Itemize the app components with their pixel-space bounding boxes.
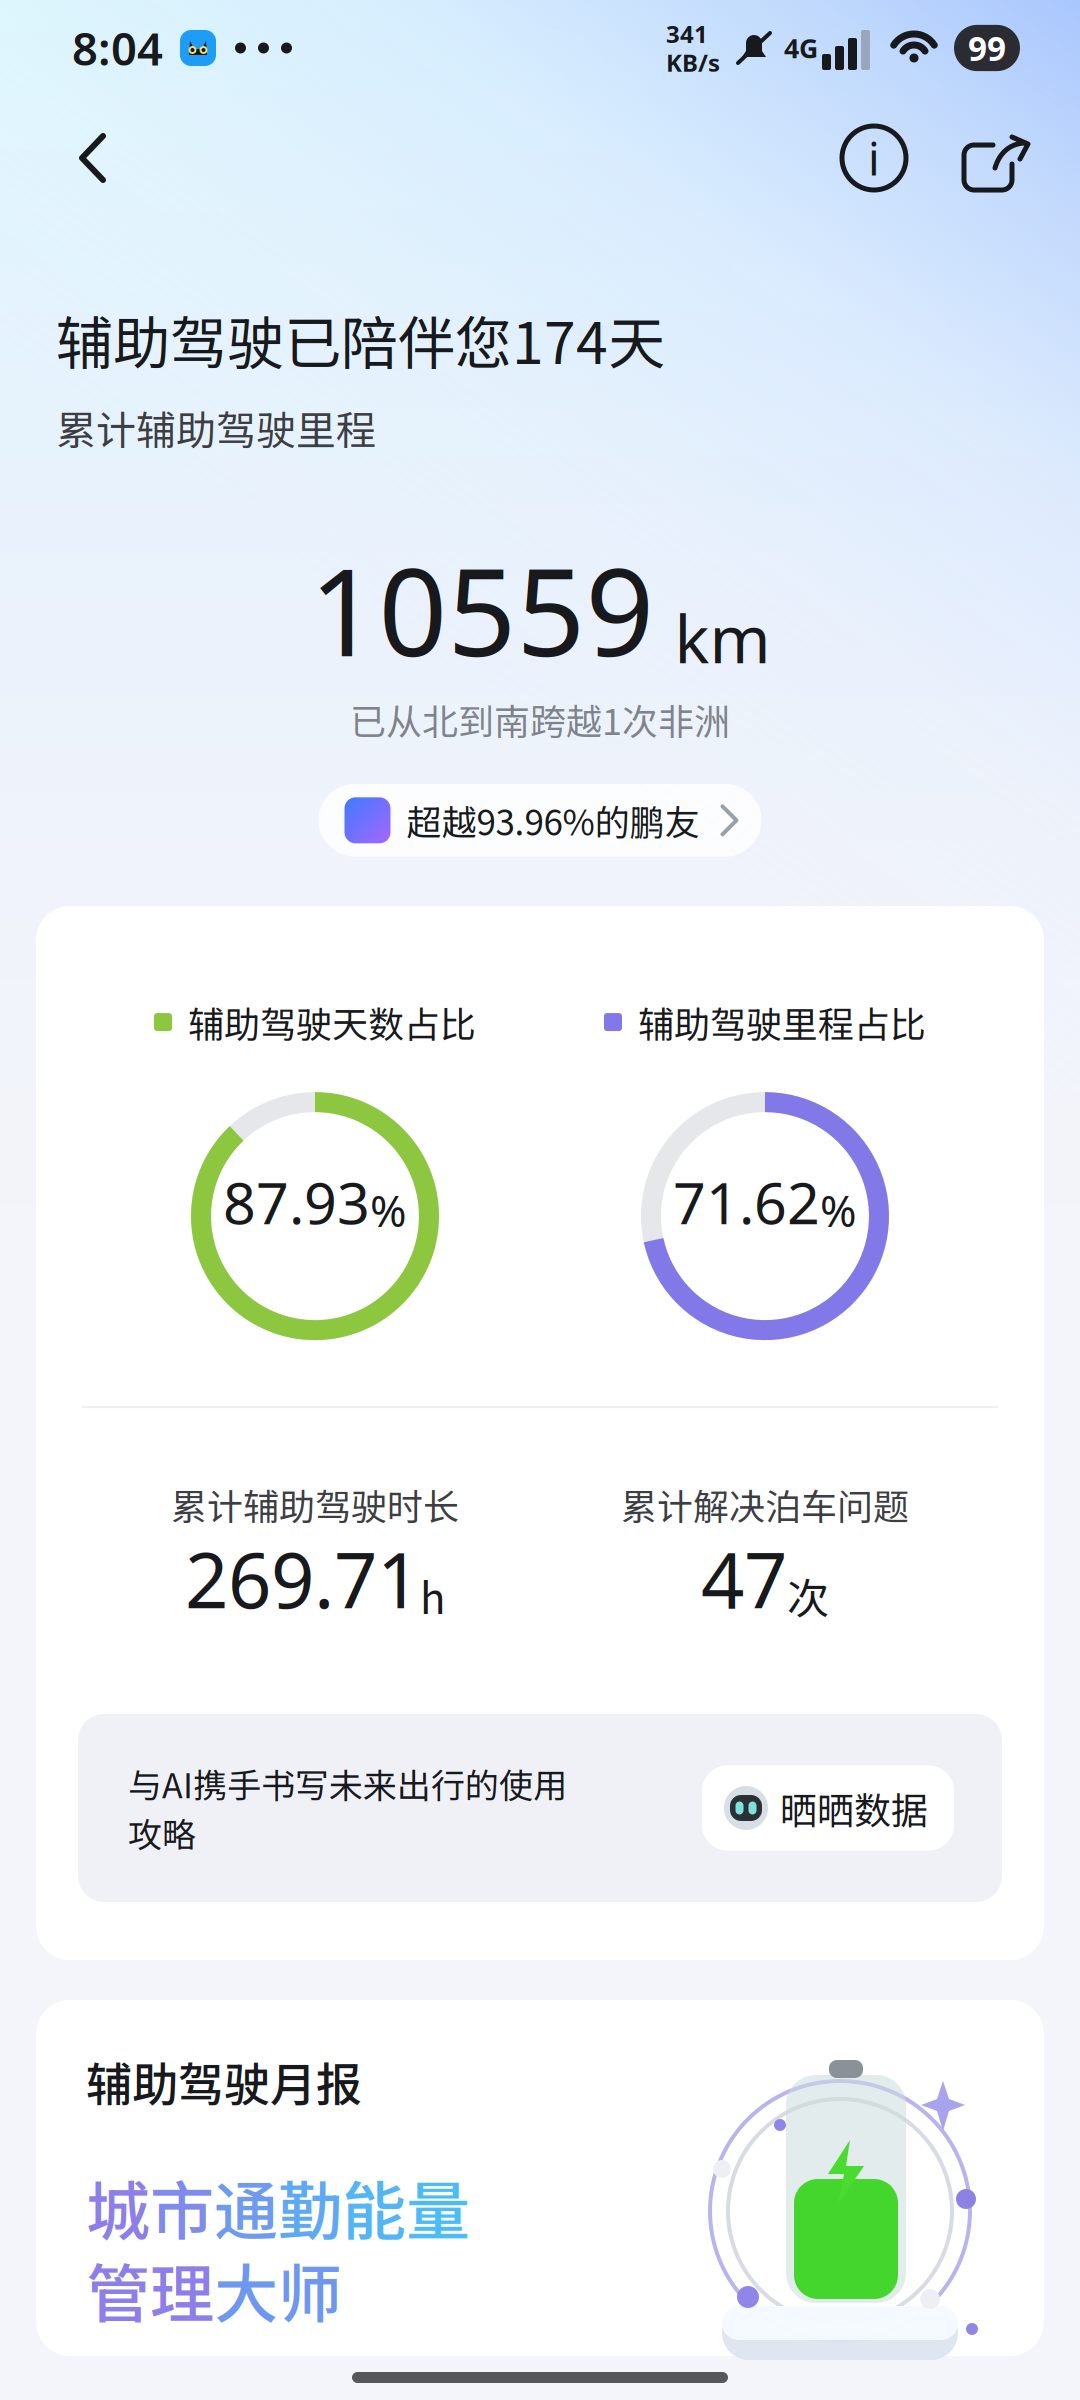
staticText: 辅助驾驶月报 — [86, 2048, 362, 2115]
staticText: 8:04 — [72, 18, 163, 78]
staticText: 晒晒数据 — [780, 1781, 928, 1835]
staticText: 99 — [968, 26, 1006, 70]
staticText: 勤 — [278, 2161, 342, 2253]
button[interactable]: 晒晒数据 — [702, 1765, 954, 1851]
staticText: 累计辅助驾驶里程 — [56, 398, 376, 456]
staticText: 269.71 — [185, 1528, 420, 1629]
staticText: 累计辅助驾驶时长 — [171, 1478, 459, 1530]
button[interactable]: 辅助驾驶月报 — [0, 1960, 1080, 2356]
staticText: 71.62 — [673, 1164, 820, 1240]
staticText: KB/s — [666, 46, 720, 78]
staticText: 87.93 — [223, 1164, 370, 1240]
staticText: 已从北到南跨越1次非洲 — [350, 693, 730, 745]
staticText: 市 — [150, 2161, 214, 2253]
staticText: 城 — [86, 2161, 150, 2253]
staticText: 累计解决泊车问题 — [621, 1478, 909, 1530]
button[interactable]: 超越93.96%的鹏友 — [318, 784, 761, 857]
staticText: 辅助驾驶里程占比 — [638, 996, 926, 1048]
staticText: 超越93.96%的鹏友 — [406, 795, 699, 846]
button[interactable]: Info — [832, 116, 916, 200]
staticText: % — [370, 1181, 407, 1239]
staticText: 通 — [214, 2161, 278, 2253]
button[interactable]: Share — [948, 116, 1032, 200]
staticText: 辅助驾驶已陪伴您174天 — [56, 298, 665, 380]
staticText: 能 — [342, 2161, 406, 2253]
staticText: 管理 — [86, 2243, 214, 2336]
staticText: 大师 — [214, 2243, 342, 2336]
staticText: 量 — [406, 2161, 470, 2253]
staticText: 次 — [787, 1565, 829, 1626]
button[interactable]: Back — [50, 116, 134, 200]
staticText: 10559 — [309, 530, 654, 689]
staticText: 4G — [784, 30, 818, 66]
staticText: 341 — [666, 18, 708, 49]
staticText: i — [868, 128, 880, 188]
staticText: 与AI携手书写未来出行的使用攻略 — [128, 1759, 567, 1857]
staticText: 47 — [701, 1528, 787, 1629]
staticText: % — [820, 1181, 857, 1239]
staticText: h — [420, 1565, 445, 1626]
staticText: 辅助驾驶天数占比 — [188, 996, 476, 1048]
staticText: km — [674, 595, 770, 681]
